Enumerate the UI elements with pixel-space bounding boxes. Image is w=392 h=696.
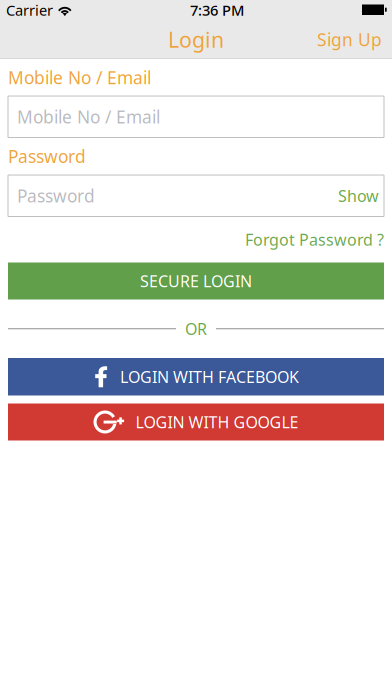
button[interactable]: Forgot Password ? — [237, 222, 384, 257]
staticText: OR — [185, 318, 207, 339]
staticText: Sign Up — [317, 28, 382, 51]
button[interactable]: SECURE LOGIN — [8, 262, 384, 299]
staticText: 7:36 PM — [190, 0, 244, 20]
button[interactable]: Sign Up — [307, 20, 392, 59]
staticText: LOGIN WITH FACEBOOK — [120, 366, 299, 387]
staticText: Password — [17, 184, 95, 207]
staticText: Login — [168, 25, 224, 54]
staticText: Forgot Password ? — [245, 229, 384, 250]
staticText: Show — [338, 185, 379, 206]
staticText: SECURE LOGIN — [140, 270, 252, 292]
button[interactable]: Show — [330, 177, 379, 214]
staticText: Mobile No / Email — [8, 66, 151, 89]
staticText: Mobile No / Email — [17, 105, 160, 128]
staticText: Password — [8, 145, 86, 168]
button[interactable]: LOGIN WITH FACEBOOK — [8, 358, 384, 395]
button[interactable]: LOGIN WITH GOOGLE — [8, 403, 384, 440]
staticText: Carrier — [6, 0, 53, 20]
staticText: LOGIN WITH GOOGLE — [135, 411, 298, 433]
